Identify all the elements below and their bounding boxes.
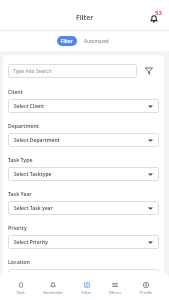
staticText: Task Type <box>8 156 33 163</box>
staticText: Filter <box>61 38 73 44</box>
staticText: Department <box>8 122 39 129</box>
button[interactable]: Select Task year <box>8 201 159 215</box>
staticText: Task Year <box>8 190 32 197</box>
staticText: Filter <box>81 289 92 295</box>
staticText: Location <box>8 258 30 265</box>
staticText: Select Department <box>14 137 60 144</box>
button[interactable]: Menu <box>107 272 123 300</box>
button[interactable]: Task <box>14 272 27 300</box>
staticText: Select Tasktype <box>14 171 52 178</box>
staticText: Filter <box>76 13 94 22</box>
button[interactable]: Select Client <box>8 99 159 113</box>
button[interactable]: Filter <box>57 36 77 46</box>
staticText: Priority <box>8 224 27 231</box>
staticText: Reminder <box>43 289 63 295</box>
staticText: 53 <box>155 9 162 17</box>
button[interactable] <box>8 269 159 283</box>
staticText: Task <box>16 289 25 295</box>
staticText: Menu <box>109 289 121 295</box>
button[interactable]: Select Priority <box>8 235 159 249</box>
staticText: Select Client <box>14 103 45 110</box>
button[interactable]: Filter <box>79 272 94 300</box>
button[interactable]: Type into Search <box>8 64 137 78</box>
button[interactable]: Profile <box>137 272 155 300</box>
staticText: Automated <box>84 38 109 44</box>
button[interactable]: Select Department <box>8 133 159 147</box>
button[interactable]: Select Tasktype <box>8 167 159 181</box>
button[interactable]: Reminder <box>41 272 65 300</box>
button[interactable]: Notifications <box>147 7 167 24</box>
staticText: Select Priority <box>14 239 48 246</box>
button[interactable]: Filter <box>141 63 156 78</box>
button[interactable]: Automated <box>77 36 116 46</box>
staticText: Client <box>8 88 23 95</box>
staticText: Type into Search <box>13 68 52 75</box>
staticText: Profile <box>139 289 153 295</box>
staticText: Select Task year <box>14 205 53 212</box>
